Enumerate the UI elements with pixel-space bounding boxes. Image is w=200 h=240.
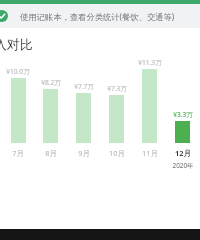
button[interactable]: ¥8.2万 [34, 58, 67, 240]
staticText: 7月 [12, 148, 24, 158]
staticText: 10月 [109, 148, 125, 158]
button[interactable]: ¥10.0万 [2, 58, 34, 240]
staticText: ¥7.7万 [74, 82, 94, 91]
other: Tip [0, 10, 8, 22]
staticText: ¥11.3万 [138, 58, 162, 67]
button[interactable]: Tip [0, 4, 200, 28]
staticText: ¥3.3万 [173, 110, 193, 119]
staticText: ¥10.0万 [6, 67, 30, 76]
staticText: 12月 [175, 148, 191, 158]
staticText: 11月 [142, 148, 158, 158]
button[interactable]: ¥7.3万 [100, 58, 133, 240]
button[interactable]: ¥7.7万 [67, 58, 100, 240]
staticText: ¥8.2万 [41, 78, 61, 87]
staticText: 9月 [78, 148, 90, 158]
staticText: 8月 [45, 148, 57, 158]
button[interactable]: ¥3.3万 [166, 58, 199, 240]
staticText: 使用记账本，查看分类统计(餐饮、交通等) [20, 11, 175, 22]
button[interactable]: ¥11.3万 [133, 58, 166, 240]
staticText: ¥7.3万 [107, 84, 127, 93]
staticText: 2020年 [172, 161, 194, 170]
staticText: 收入对比 [0, 36, 33, 52]
